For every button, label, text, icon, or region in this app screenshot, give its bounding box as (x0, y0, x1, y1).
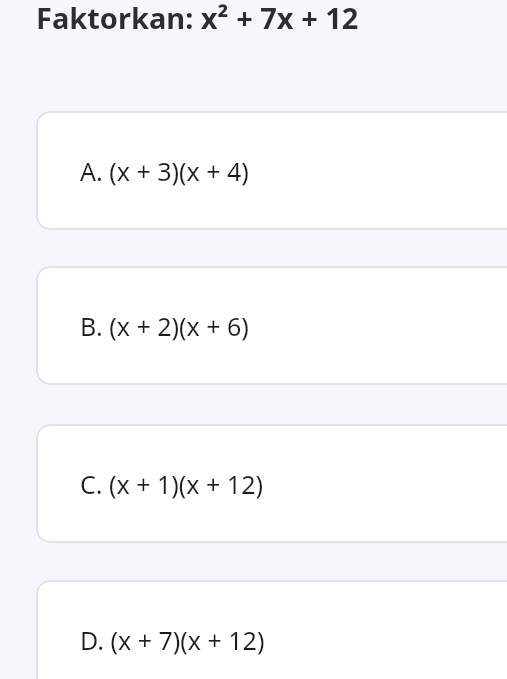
staticText: B. (x + 2)(x + 6) (80, 309, 249, 343)
button[interactable]: D. (x + 7)(x + 12) (36, 580, 507, 679)
button[interactable]: A. (x + 3)(x + 4) (36, 111, 507, 230)
button[interactable]: B. (x + 2)(x + 6) (36, 266, 507, 385)
staticText: Faktorkan: x² + 7x + 12 (36, 0, 359, 37)
staticText: C. (x + 1)(x + 12) (80, 467, 263, 501)
staticText: D. (x + 7)(x + 12) (80, 623, 265, 657)
button[interactable]: C. (x + 1)(x + 12) (36, 424, 507, 543)
staticText: A. (x + 3)(x + 4) (80, 154, 249, 188)
